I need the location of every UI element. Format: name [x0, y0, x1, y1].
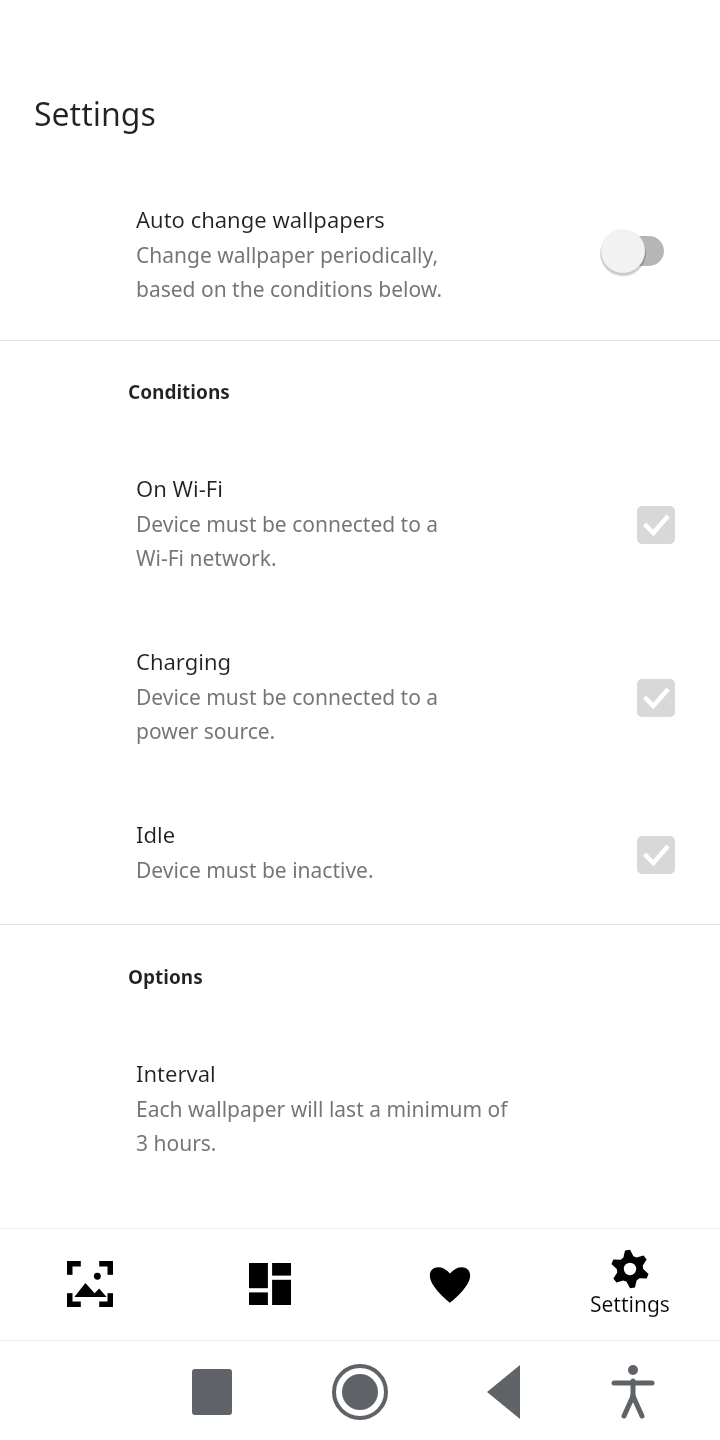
staticText: Device must be inactive. [136, 856, 374, 885]
staticText: Options [128, 964, 203, 990]
button[interactable]: Idle [0, 811, 720, 901]
staticText: power source. [136, 717, 276, 746]
button[interactable]: Auto change wallpapers [0, 196, 720, 336]
button[interactable]: Categories [180, 1228, 360, 1340]
staticText: Auto change wallpapers [136, 204, 385, 234]
staticText: Settings [590, 1290, 670, 1319]
staticText: 3 hours. [136, 1129, 217, 1158]
button[interactable]: Charging [0, 638, 720, 763]
staticText: Settings [34, 92, 156, 136]
staticText: Idle [136, 819, 176, 849]
button[interactable]: Settings [540, 1228, 720, 1340]
button[interactable]: Interval [0, 1050, 720, 1175]
staticText: Device must be connected to a [136, 510, 439, 539]
staticText: based on the conditions below. [136, 275, 443, 304]
staticText: On Wi-Fi [136, 473, 223, 503]
staticText: Charging [136, 646, 232, 676]
staticText: Device must be connected to a [136, 683, 439, 712]
button[interactable]: Checked [636, 835, 676, 875]
staticText: Each wallpaper will last a minimum of [136, 1095, 508, 1124]
staticText: Interval [136, 1058, 216, 1088]
button[interactable]: Checked [636, 505, 676, 545]
button[interactable]: Wallpapers [0, 1228, 180, 1340]
button[interactable]: Favourites [360, 1228, 540, 1340]
staticText: Wi-Fi network. [136, 544, 277, 573]
staticText: Conditions [128, 379, 230, 405]
button[interactable]: On Wi-Fi [0, 465, 720, 590]
button[interactable]: Checked [636, 678, 676, 718]
staticText: Change wallpaper periodically, [136, 241, 439, 270]
